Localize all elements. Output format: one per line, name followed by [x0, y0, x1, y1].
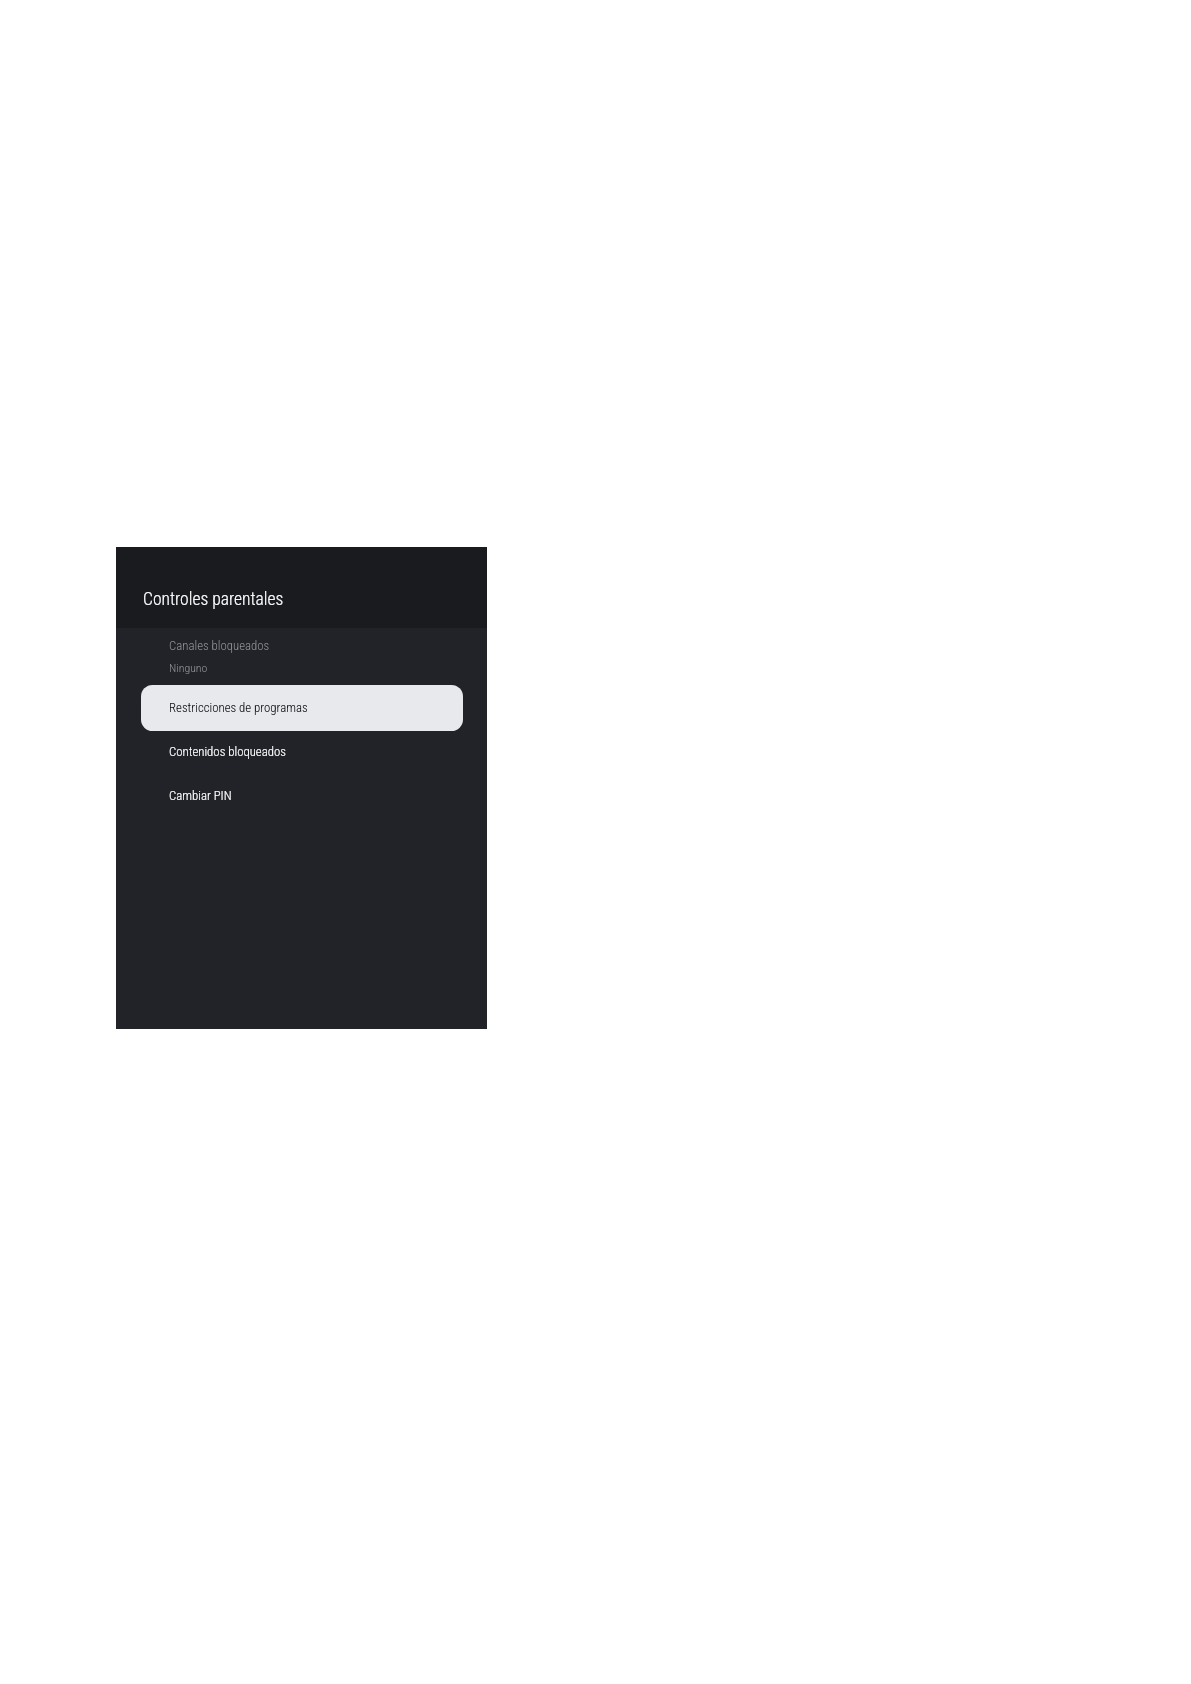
staticText: Contenidos bloqueados: [169, 744, 286, 759]
button[interactable]: Contenidos bloqueados: [116, 733, 487, 769]
button[interactable]: Cambiar PIN: [116, 777, 487, 813]
staticText: Restricciones de programas: [169, 700, 308, 715]
button[interactable]: Canales bloqueados: [116, 631, 487, 679]
button[interactable]: Restricciones de programas: [141, 685, 463, 731]
staticText: Controles parentales: [143, 589, 284, 610]
staticText: Restricciones de programas: [169, 700, 308, 715]
staticText: Canales bloqueados: [169, 638, 270, 653]
staticText: Cambiar PIN: [169, 788, 232, 803]
staticText: Ninguno: [169, 661, 208, 675]
